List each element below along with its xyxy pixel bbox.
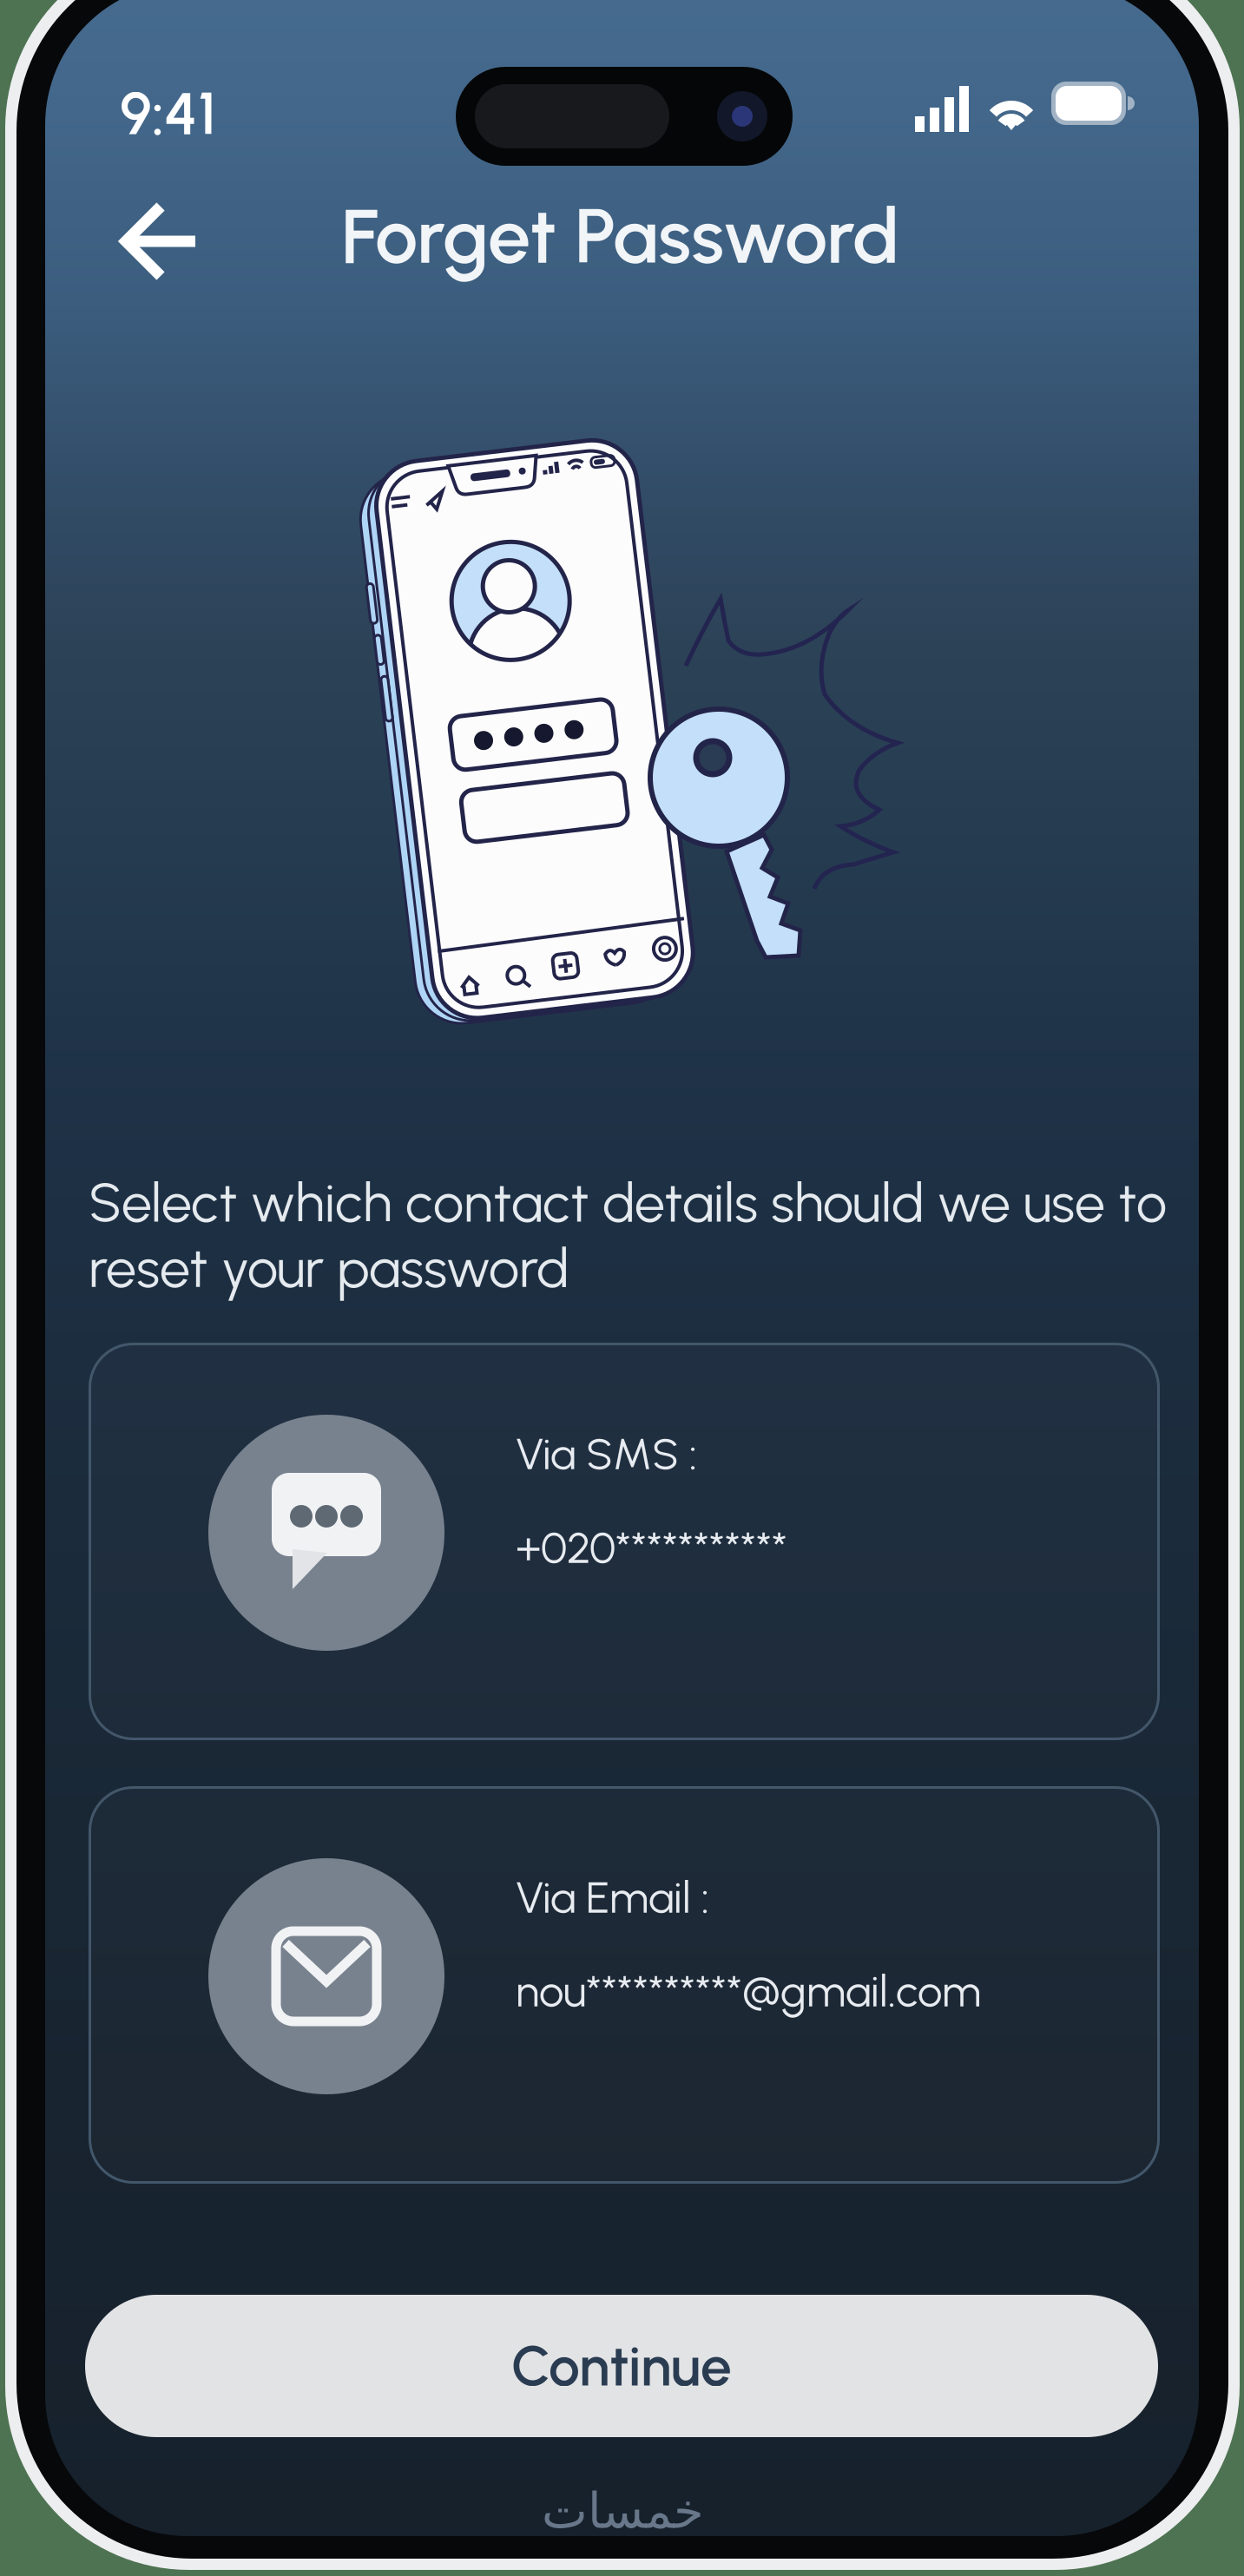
staticText: 9:41 [120, 78, 216, 149]
staticText: Select which contact details should we u… [89, 1170, 1167, 1300]
button[interactable]: Continue [85, 2295, 1158, 2437]
button[interactable]: Via SMS : [89, 1343, 1160, 1740]
staticText: Forget Password [341, 190, 899, 282]
staticText: nou**********@gmail.com [516, 1965, 981, 2017]
staticText: Continue [511, 2333, 732, 2399]
staticText: Via SMS : [516, 1427, 697, 1480]
button[interactable]: Via Email : [89, 1786, 1160, 2184]
button[interactable]: Back [63, 181, 219, 302]
staticText: خمسات [541, 2483, 704, 2539]
staticText: Via Email : [516, 1871, 709, 1924]
staticText: +020*********** [516, 1521, 787, 1574]
